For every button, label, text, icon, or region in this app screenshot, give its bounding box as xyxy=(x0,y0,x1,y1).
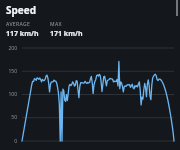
staticText: 117 km/h xyxy=(6,29,39,39)
button[interactable]: MAX xyxy=(50,21,94,39)
button[interactable]: Speed xyxy=(6,3,37,17)
staticText: 0 xyxy=(0,138,17,145)
button[interactable]: AVERAGE xyxy=(6,21,50,39)
staticText: 50 xyxy=(0,114,17,121)
staticText: 100 xyxy=(0,91,17,98)
button[interactable]: Speed over time chart xyxy=(0,44,180,145)
staticText: MAX xyxy=(50,21,62,28)
staticText: 150 xyxy=(0,68,17,75)
staticText: 171 km/h xyxy=(50,29,83,39)
staticText: AVERAGE xyxy=(6,21,31,28)
staticText: 200 xyxy=(0,45,17,52)
